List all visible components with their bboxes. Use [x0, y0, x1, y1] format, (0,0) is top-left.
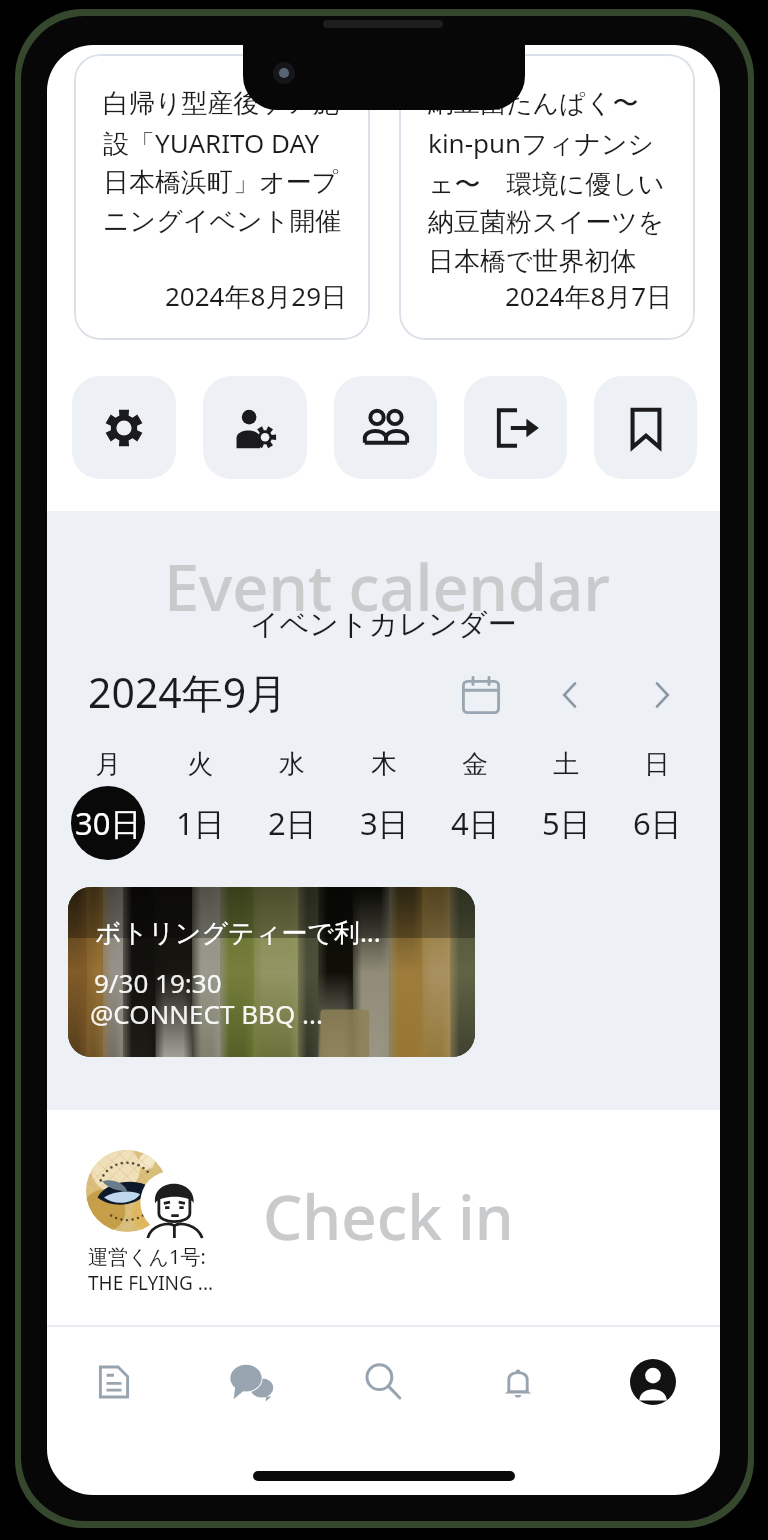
staticText: 30日 [75, 802, 142, 844]
staticText: 2024年9月 [88, 664, 288, 720]
button[interactable]: Profile [585, 1327, 720, 1437]
staticText: 2024年8月29日 [165, 278, 348, 314]
staticText: 月 [95, 748, 121, 781]
button[interactable]: Feed [47, 1327, 181, 1437]
button[interactable]: 白帰り型産後ケア施設「YUARITO DAY 日本橋浜町」オープニングイベント開… [74, 54, 370, 340]
button[interactable]: Account settings [203, 376, 307, 479]
button[interactable]: 3日 [347, 786, 421, 860]
staticText: 9/30 19:30 [94, 965, 222, 1000]
staticText: 金 [462, 748, 488, 781]
staticText: 火 [187, 748, 213, 781]
staticText: Event calendar [164, 544, 610, 630]
button[interactable]: Messages [181, 1327, 315, 1437]
button[interactable]: 6日 [620, 786, 694, 860]
staticText: @CONNECT BBQ ... [90, 996, 323, 1031]
button[interactable]: 4日 [438, 786, 512, 860]
staticText: 木 [371, 748, 397, 781]
staticText: Check in [263, 1174, 514, 1258]
button[interactable]: 2日 [255, 786, 329, 860]
button[interactable]: ボトリングティーで利... [68, 887, 475, 1057]
button[interactable]: Check in [263, 1174, 514, 1258]
button[interactable]: Search [315, 1327, 450, 1437]
staticText: ボトリングティーで利... [95, 914, 381, 950]
staticText: 2024年8月7日 [505, 278, 673, 314]
staticText: 日 [644, 748, 670, 781]
staticText: 5日 [542, 802, 591, 844]
staticText: 土 [553, 748, 579, 781]
button[interactable]: Previous month [546, 670, 596, 720]
staticText: 3日 [360, 802, 409, 844]
staticText: 4日 [451, 802, 500, 844]
staticText: 2日 [268, 802, 317, 844]
button[interactable]: 納豆菌たんぱく〜kin-punフィナンシェ〜 環境に優しい納豆菌粉スイーツを日本… [399, 54, 695, 340]
button[interactable]: Settings [72, 376, 176, 479]
button[interactable]: Saved [594, 376, 697, 479]
button[interactable]: 30日 [71, 786, 145, 860]
button[interactable]: 1日 [163, 786, 237, 860]
button[interactable]: Open date picker [456, 670, 506, 720]
staticText: 水 [279, 748, 305, 781]
staticText: イベントカレンダー [250, 606, 517, 643]
staticText: 1日 [176, 802, 225, 844]
button[interactable]: 5日 [529, 786, 603, 860]
button[interactable]: Members [334, 376, 437, 479]
button[interactable]: Log out [464, 376, 567, 479]
button[interactable]: Check in host profile [86, 1150, 206, 1236]
button[interactable]: Notifications [450, 1327, 585, 1437]
staticText: 6日 [633, 802, 682, 844]
staticText: 白帰り型産後ケア施設「YUARITO DAY 日本橋浜町」オープニングイベント開… [103, 87, 348, 238]
staticText: THE FLYING ... [88, 1270, 214, 1296]
staticText: 運営くん1号: [88, 1243, 206, 1270]
button[interactable]: Next month [636, 670, 686, 720]
staticText: 納豆菌たんぱく〜kin-punフィナンシェ〜 環境に優しい納豆菌粉スイーツを日本… [428, 87, 673, 278]
